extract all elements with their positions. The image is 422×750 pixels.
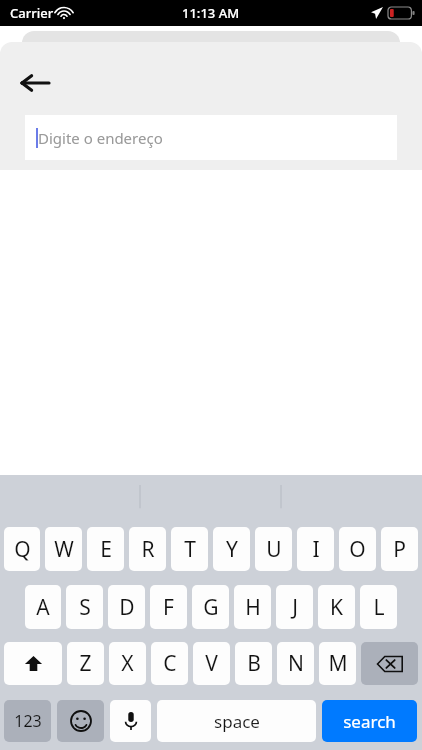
staticText: G — [203, 593, 219, 622]
staticText: Z — [79, 649, 92, 678]
button[interactable]: Emoji — [57, 700, 104, 742]
staticText: Carrier — [10, 4, 54, 22]
staticText: K — [330, 593, 343, 622]
button[interactable]: R — [129, 527, 166, 571]
button[interactable]: Digite o endereço — [25, 115, 397, 160]
staticText: 123 — [14, 710, 42, 732]
button[interactable]: I — [297, 527, 334, 571]
button[interactable]: O — [339, 527, 376, 571]
button[interactable]: K — [318, 585, 355, 629]
button[interactable]: space — [157, 700, 316, 742]
staticText: H — [245, 593, 261, 622]
button[interactable]: search — [322, 700, 417, 742]
button[interactable]: Z — [67, 642, 104, 685]
button[interactable]: 123 — [4, 700, 51, 742]
button[interactable]: Shift — [4, 642, 62, 685]
button[interactable]: Q — [4, 527, 40, 571]
button[interactable]: X — [109, 642, 146, 685]
button[interactable]: V — [193, 642, 230, 685]
staticText: Digite o endereço — [38, 128, 163, 148]
button[interactable]: Backspace — [361, 642, 418, 685]
staticText: L — [373, 593, 385, 622]
staticText: B — [247, 649, 261, 678]
button[interactable]: D — [108, 585, 145, 629]
button[interactable]: U — [255, 527, 292, 571]
button[interactable]: M — [319, 642, 356, 685]
button[interactable]: Back — [10, 64, 58, 102]
staticText: U — [266, 535, 282, 564]
staticText: A — [36, 593, 50, 622]
button[interactable]: B — [235, 642, 272, 685]
button[interactable]: N — [277, 642, 314, 685]
staticText: C — [163, 649, 177, 678]
staticText: E — [100, 535, 112, 564]
staticText: T — [184, 535, 196, 564]
staticText: search — [343, 710, 396, 733]
staticText: Q — [14, 535, 31, 564]
button[interactable]: H — [234, 585, 271, 629]
staticText: I — [312, 535, 320, 564]
staticText: R — [141, 535, 155, 564]
staticText: J — [292, 593, 298, 622]
button[interactable]: G — [192, 585, 229, 629]
button[interactable]: Y — [213, 527, 250, 571]
staticText: V — [205, 649, 218, 678]
staticText: F — [163, 593, 174, 622]
button[interactable]: S — [66, 585, 103, 629]
button[interactable]: J — [276, 585, 313, 629]
button[interactable]: P — [381, 527, 418, 571]
staticText: Y — [226, 535, 238, 564]
staticText: P — [393, 535, 406, 564]
staticText: 11:13 AM — [182, 4, 240, 22]
staticText: N — [288, 649, 304, 678]
button[interactable]: F — [150, 585, 187, 629]
staticText: S — [79, 593, 91, 622]
button[interactable]: E — [87, 527, 124, 571]
button[interactable]: W — [45, 527, 82, 571]
staticText: M — [328, 649, 348, 678]
button[interactable]: Dictate — [110, 700, 151, 742]
button[interactable]: A — [25, 585, 61, 629]
button[interactable]: T — [171, 527, 208, 571]
staticText: D — [119, 593, 135, 622]
button[interactable]: C — [151, 642, 188, 685]
staticText: O — [349, 535, 366, 564]
button[interactable]: L — [360, 585, 397, 629]
staticText: space — [214, 710, 260, 733]
staticText: X — [121, 649, 134, 678]
staticText: W — [54, 535, 74, 564]
